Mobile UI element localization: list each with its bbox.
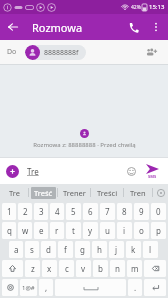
staticText: . [134, 282, 137, 293]
button[interactable]: 7 [100, 203, 115, 220]
button[interactable]: 0 [151, 203, 166, 220]
staticText: h [97, 244, 102, 255]
button[interactable]: x [42, 260, 57, 277]
staticText: n [115, 263, 120, 274]
staticText: Treść [34, 188, 53, 198]
button[interactable]: Tre [0, 184, 28, 201]
staticText: t [72, 225, 75, 236]
staticText: SMS [148, 174, 157, 179]
button[interactable]: 6 [83, 203, 98, 220]
button[interactable]: Call [120, 14, 146, 40]
button[interactable]: More suggestions [153, 184, 168, 201]
staticText: 7 [105, 206, 110, 217]
button[interactable]: Tren [124, 184, 152, 201]
button[interactable]: 3 [34, 203, 48, 220]
button[interactable]: Tre [27, 166, 123, 177]
staticText: u [105, 225, 110, 236]
button[interactable]: o [134, 222, 149, 239]
button[interactable]: Add attachment [6, 165, 19, 178]
button[interactable]: m [127, 260, 142, 277]
staticText: d [46, 244, 51, 255]
button[interactable]: w [18, 222, 32, 239]
button[interactable]: . [128, 279, 142, 296]
staticText: i [123, 225, 126, 236]
staticText: Trener [63, 188, 86, 198]
button[interactable]: 1 [2, 203, 16, 220]
staticText: 42% [131, 4, 141, 11]
button[interactable]: l [143, 241, 158, 258]
button[interactable]: f [58, 241, 73, 258]
button[interactable]: h [92, 241, 107, 258]
button[interactable]: Treść [29, 184, 57, 201]
staticText: o [139, 225, 144, 236]
button[interactable]: 8 [117, 203, 132, 220]
button[interactable]: j [109, 241, 124, 258]
button[interactable]: k [126, 241, 141, 258]
staticText: x [47, 263, 52, 274]
staticText: a [14, 244, 19, 255]
staticText: 3 [39, 206, 44, 217]
staticText: 1 [7, 206, 12, 217]
staticText: p [156, 225, 161, 236]
staticText: j [115, 244, 118, 255]
staticText: e [39, 225, 44, 236]
button[interactable]: q [2, 222, 16, 239]
button[interactable]: n [110, 260, 125, 277]
button[interactable]: 88888888f [25, 45, 86, 60]
button[interactable]: i [117, 222, 132, 239]
staticText: Tre [27, 166, 39, 177]
button[interactable]: c [59, 260, 74, 277]
staticText: Rozmowa z: 88888888 · Przed chwilą [33, 141, 136, 149]
button[interactable]: Add recipient [141, 42, 161, 62]
button[interactable]: Emoji [123, 163, 139, 179]
button[interactable]: u [100, 222, 115, 239]
button[interactable]: Backspace [144, 260, 166, 277]
staticText: 8 [122, 206, 127, 217]
button[interactable]: s [25, 241, 39, 258]
button[interactable]: 9 [134, 203, 149, 220]
button[interactable]: v [76, 260, 91, 277]
staticText: l [149, 244, 152, 255]
button[interactable]: b [93, 260, 108, 277]
staticText: Treści [97, 188, 118, 198]
staticText: f [64, 244, 67, 255]
button[interactable]: Space [55, 279, 126, 296]
staticText: b [98, 263, 103, 274]
button[interactable]: g [75, 241, 90, 258]
button[interactable]: Back [0, 14, 26, 40]
staticText: g [80, 244, 85, 255]
button[interactable]: , [39, 279, 53, 296]
button[interactable]: Send SMS [142, 164, 162, 179]
button[interactable]: Enter [144, 279, 166, 296]
button[interactable]: Treści [91, 184, 123, 201]
staticText: Tre [9, 188, 20, 198]
button[interactable]: r [50, 222, 64, 239]
staticText: w [22, 225, 29, 236]
button[interactable]: a [9, 241, 23, 258]
button[interactable]: 5 [66, 203, 81, 220]
staticText: 4 [55, 206, 60, 217]
button[interactable]: p [151, 222, 166, 239]
staticText: y [88, 225, 93, 236]
button[interactable]: t [66, 222, 81, 239]
button[interactable]: 4 [50, 203, 64, 220]
staticText: v [81, 263, 86, 274]
staticText: 6 [88, 206, 93, 217]
button[interactable]: e [34, 222, 48, 239]
button[interactable]: y [83, 222, 98, 239]
staticText: 9 [139, 206, 144, 217]
staticText: 5 [71, 206, 76, 217]
button[interactable]: More options [146, 17, 166, 37]
staticText: , [45, 282, 48, 293]
staticText: s [30, 244, 34, 255]
button[interactable]: d [41, 241, 56, 258]
button[interactable]: Settings [2, 279, 18, 296]
button[interactable]: 1@# [20, 279, 37, 296]
button[interactable]: Shift [2, 260, 23, 277]
staticText: Do [7, 47, 17, 57]
staticText: k [131, 244, 136, 255]
button[interactable]: z [25, 260, 40, 277]
button[interactable]: Trener [58, 184, 90, 201]
staticText: 1@# [22, 284, 35, 292]
button[interactable]: 2 [18, 203, 32, 220]
